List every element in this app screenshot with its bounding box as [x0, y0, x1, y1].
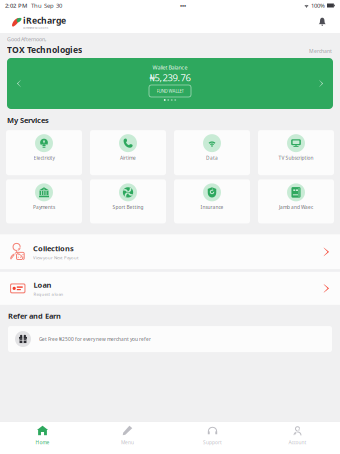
button[interactable]: Loan [0, 272, 340, 305]
staticText: Wallet Balance [152, 64, 187, 71]
button[interactable]: Sport Betting [90, 179, 166, 223]
staticText: View your Next Payout [33, 255, 79, 260]
staticText: 100% [311, 1, 325, 9]
staticText: ••• [180, 2, 186, 9]
staticText: 2:02 PM [5, 1, 27, 9]
staticText: TOX Technologies [7, 44, 82, 55]
button[interactable]: FUND WALLET [149, 85, 191, 97]
staticText: commerce solutions [23, 26, 48, 30]
button[interactable]: Menu [85, 422, 170, 454]
staticText: TV Subscription [278, 155, 313, 161]
staticText: Good Afternoon, [7, 36, 46, 43]
button[interactable]: Payments [6, 179, 82, 223]
staticText: Thu Sep 30 [31, 1, 62, 9]
staticText: iRecharge [23, 14, 66, 26]
staticText: Collections [33, 243, 74, 253]
staticText: Data [206, 155, 218, 161]
button[interactable]: Collections [0, 234, 340, 269]
button[interactable]: Next card [319, 80, 323, 87]
button[interactable]: Get Free ₦2500 for every new merchant yo… [8, 326, 332, 352]
staticText: Payments [33, 204, 55, 210]
staticText: My Services [7, 115, 49, 125]
staticText: Sport Betting [112, 204, 143, 210]
button[interactable]: Notifications [318, 17, 326, 26]
staticText: ₦5,239.76 [149, 71, 190, 84]
staticText: Insurance [200, 204, 223, 210]
staticText: Menu [121, 439, 134, 446]
button[interactable]: Insurance [174, 179, 250, 223]
staticText: FUND WALLET [156, 88, 183, 94]
button[interactable]: Home [0, 422, 85, 454]
staticText: Request a loan [33, 291, 63, 297]
button[interactable]: TV Subscription [258, 130, 334, 175]
button[interactable]: Previous card [17, 80, 21, 87]
staticText: Account [288, 439, 306, 446]
button[interactable]: Data [174, 130, 250, 175]
button[interactable]: Account [255, 422, 340, 454]
staticText: Merchant [309, 47, 332, 54]
staticText: Support [203, 439, 222, 446]
button[interactable]: Electricity [6, 130, 82, 175]
staticText: Loan [33, 280, 51, 290]
staticText: Jamb and Waec [279, 204, 313, 210]
staticText: Refer and Earn [8, 311, 61, 321]
staticText: Airtime [120, 155, 136, 161]
button[interactable]: Jamb and Waec [258, 179, 334, 223]
staticText: Electricity [33, 155, 54, 161]
staticText: Home [35, 439, 49, 446]
staticText: Get Free ₦2500 for every new merchant yo… [39, 336, 151, 342]
button[interactable]: Airtime [90, 130, 166, 175]
button[interactable]: Support [170, 422, 255, 454]
